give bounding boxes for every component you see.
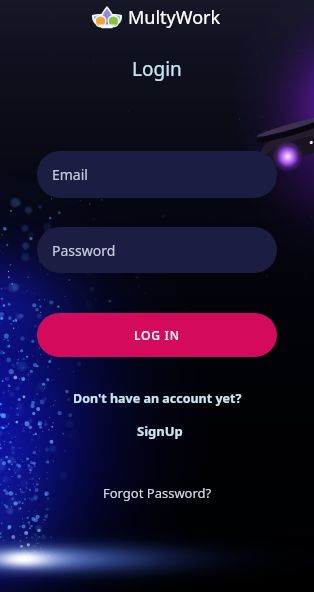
staticText: LOG IN xyxy=(134,327,180,343)
button[interactable]: SignUp xyxy=(129,419,191,443)
staticText: Password xyxy=(52,241,116,260)
button[interactable]: Don't have an account yet? xyxy=(67,387,248,410)
button[interactable]: Password xyxy=(37,227,277,273)
button[interactable]: Email xyxy=(37,151,277,198)
staticText: Forgot Password? xyxy=(103,484,212,502)
staticText: Login xyxy=(132,56,182,82)
staticText: MultyWork xyxy=(128,5,221,30)
staticText: Don't have an account yet? xyxy=(73,390,242,407)
button[interactable]: LOG IN xyxy=(37,313,277,357)
button[interactable]: Forgot Password? xyxy=(95,481,220,505)
staticText: Email xyxy=(52,165,88,184)
staticText: SignUp xyxy=(137,422,183,440)
